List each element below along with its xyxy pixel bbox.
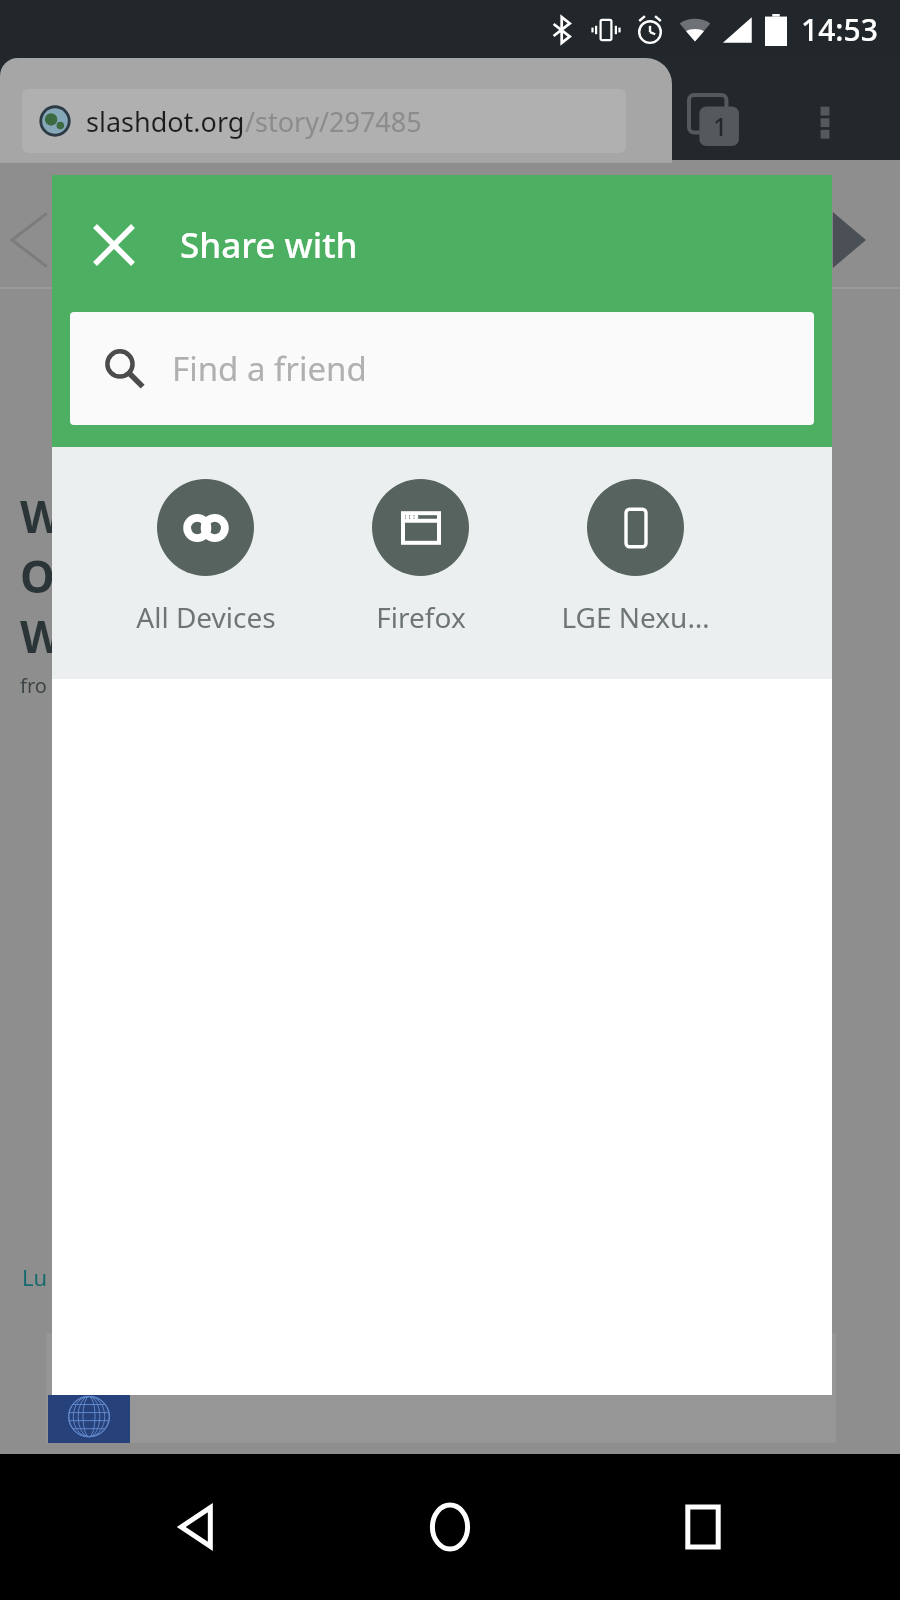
- staticText: Share with: [180, 221, 358, 269]
- staticText: O: [20, 546, 55, 606]
- staticText: W: [20, 606, 63, 666]
- button[interactable]: Find a friend: [70, 312, 814, 425]
- button[interactable]: Close: [78, 209, 150, 281]
- staticText: All Devices: [136, 598, 276, 636]
- button[interactable]: LGE Nexu…: [528, 479, 743, 636]
- button[interactable]: Home: [395, 1472, 505, 1582]
- staticText: 14:53: [801, 9, 878, 50]
- staticText: fro: [20, 672, 47, 699]
- staticText: W: [20, 486, 63, 546]
- button[interactable]: Recent apps: [648, 1472, 758, 1582]
- staticText: Lu: [22, 1262, 48, 1292]
- button[interactable]: slashdot.org: [22, 89, 626, 153]
- button[interactable]: All Devices: [98, 479, 313, 636]
- staticText: LGE Nexu…: [561, 598, 710, 636]
- button[interactable]: Firefox: [313, 479, 528, 636]
- button[interactable]: More options: [786, 82, 864, 160]
- staticText: Firefox: [376, 598, 466, 636]
- button[interactable]: Tabs: [676, 82, 754, 160]
- staticText: slashdot.org: [86, 103, 245, 140]
- staticText: Find a friend: [172, 346, 367, 391]
- staticText: 1: [713, 109, 728, 143]
- staticText: /story/297485: [245, 103, 422, 140]
- button[interactable]: Back: [143, 1472, 253, 1582]
